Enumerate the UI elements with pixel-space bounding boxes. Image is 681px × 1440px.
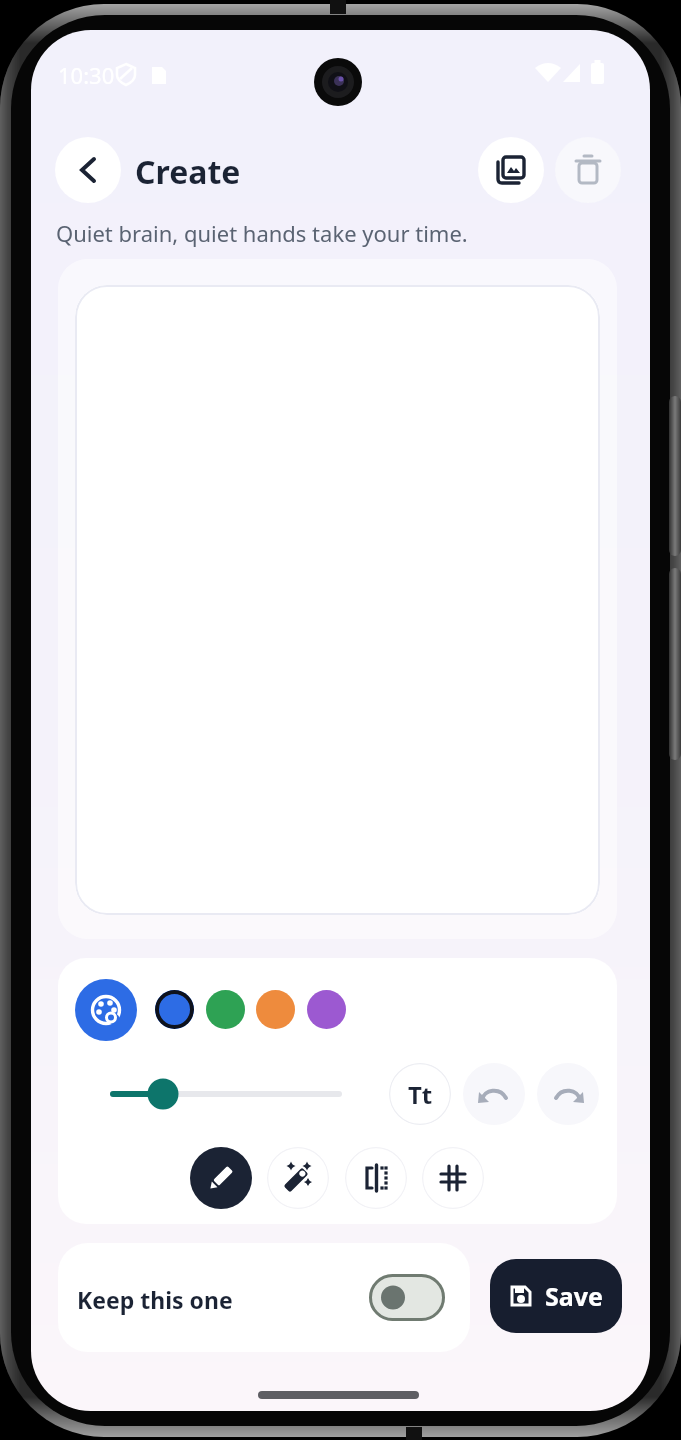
button[interactable] [369, 1274, 445, 1321]
button[interactable] [256, 990, 295, 1029]
button[interactable]: Tt [389, 1063, 451, 1125]
button[interactable]: Save [490, 1259, 622, 1333]
button[interactable] [155, 990, 194, 1029]
button[interactable] [75, 979, 137, 1041]
button[interactable] [555, 137, 621, 203]
button[interactable] [307, 990, 346, 1029]
button[interactable] [478, 137, 544, 203]
button[interactable] [190, 1147, 252, 1209]
button[interactable] [537, 1063, 599, 1125]
button[interactable] [345, 1147, 407, 1209]
staticText: Quiet brain, quiet hands take your time. [56, 218, 468, 248]
button[interactable] [110, 1070, 342, 1118]
button[interactable] [463, 1063, 525, 1125]
staticText: Create [135, 150, 241, 194]
button[interactable]: Keep this one [58, 1243, 470, 1352]
button[interactable] [422, 1147, 484, 1209]
staticText: 10:30 [58, 60, 115, 90]
button[interactable] [206, 990, 245, 1029]
staticText: Keep this one [77, 1284, 233, 1315]
staticText: Save [545, 1279, 603, 1313]
button[interactable] [267, 1147, 329, 1209]
button[interactable] [55, 137, 121, 203]
staticText: Tt [408, 1078, 433, 1111]
